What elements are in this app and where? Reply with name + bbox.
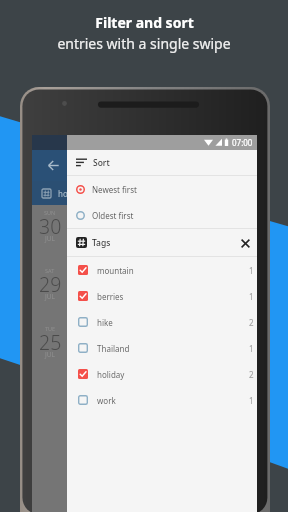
staticText: JUL (45, 234, 55, 243)
staticText: holiday (97, 369, 125, 380)
button[interactable]: holiday (32, 181, 257, 205)
staticText: 1 (249, 343, 254, 354)
staticText: 2 (249, 317, 254, 328)
button[interactable]: Sort (67, 150, 257, 175)
staticText: 1 (249, 291, 254, 302)
staticText: Thailand (97, 343, 130, 354)
staticText: mountain (97, 265, 134, 276)
button[interactable]: mountain (67, 257, 257, 283)
staticText: 25 (39, 329, 62, 356)
button[interactable]: hike (67, 309, 257, 335)
staticText: hike (97, 317, 113, 328)
button[interactable]: Close (236, 234, 254, 252)
button[interactable]: Oldest first (67, 202, 257, 228)
staticText: entries with a single swipe (57, 34, 231, 53)
staticText: SUN (44, 209, 56, 216)
staticText: 1 (249, 395, 254, 406)
staticText: berries (97, 291, 124, 302)
button[interactable]: Tags (67, 229, 257, 256)
staticText: Filter and sort (95, 13, 194, 32)
button[interactable]: Newest first (67, 176, 257, 202)
staticText: Newest first (92, 184, 137, 195)
button[interactable]: Back (40, 150, 67, 181)
staticText: holiday (58, 188, 86, 199)
staticText: 1 (249, 265, 254, 276)
button[interactable]: work (67, 387, 257, 413)
staticText: JUL (45, 292, 55, 301)
staticText: TUE (45, 325, 56, 332)
staticText: 29 (39, 271, 62, 298)
button[interactable]: holiday (67, 361, 257, 387)
staticText: work (97, 395, 116, 406)
staticText: SAT (45, 267, 55, 274)
button[interactable]: Thailand (67, 335, 257, 361)
staticText: 2 (249, 369, 254, 380)
staticText: Tags (92, 237, 111, 249)
staticText: JUL (45, 350, 55, 359)
staticText: Oldest first (92, 210, 134, 221)
button[interactable]: berries (67, 283, 257, 309)
staticText: Sort (93, 157, 110, 169)
staticText: 07:00 (232, 137, 253, 148)
staticText: 30 (39, 213, 62, 240)
